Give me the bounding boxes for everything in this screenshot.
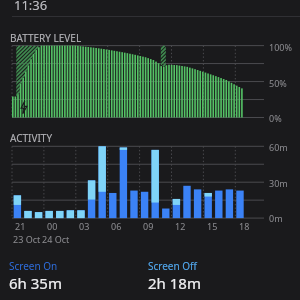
staticText: 100% (269, 41, 292, 53)
staticText: 30m (269, 177, 288, 189)
staticText: 18 (239, 220, 250, 232)
staticText: 09 (143, 220, 154, 232)
button[interactable]: Screen On (9, 259, 62, 293)
staticText: 12 (175, 220, 186, 232)
staticText: ACTIVITY (10, 131, 53, 145)
button[interactable]: Screen Off (148, 259, 201, 293)
staticText: 50% (269, 77, 287, 89)
staticText: 06 (111, 220, 122, 232)
staticText: 21 (15, 220, 26, 232)
staticText: 15 (207, 220, 218, 232)
staticText: 0% (269, 112, 282, 124)
staticText: 00 (47, 220, 58, 232)
staticText: 03 (79, 220, 90, 232)
staticText: 60m (269, 141, 288, 153)
staticText: Screen Off (148, 259, 197, 273)
staticText: 24 Oct (42, 233, 70, 245)
staticText: 0m (269, 212, 283, 224)
staticText: 2h 18m (148, 273, 201, 293)
staticText: BATTERY LEVEL (10, 31, 82, 45)
staticText: 6h 35m (9, 273, 62, 293)
staticText: Screen On (9, 259, 58, 273)
staticText: 11:36 (14, 0, 48, 14)
staticText: 23 Oct (13, 233, 41, 245)
